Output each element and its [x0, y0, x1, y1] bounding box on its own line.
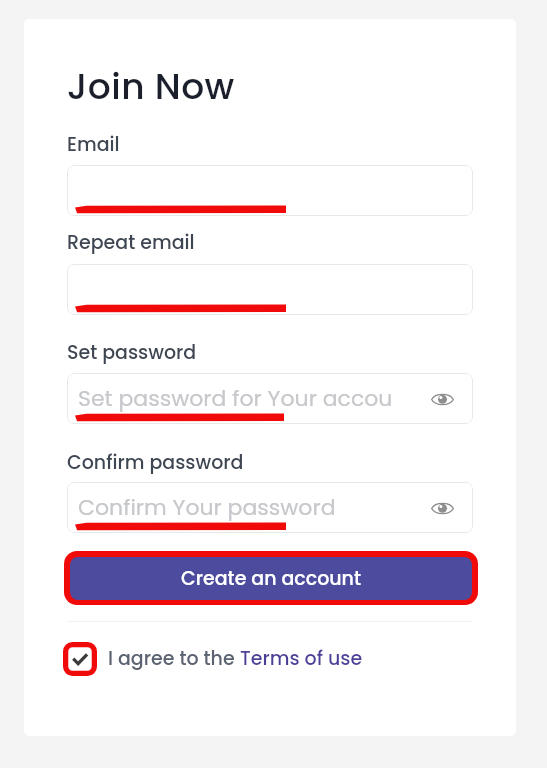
staticText: Set password for Your accou — [78, 383, 393, 414]
button[interactable]: I agree to the Terms of use — [63, 642, 97, 676]
button[interactable]: Set password for Your accou — [67, 373, 473, 424]
button[interactable]: Show password — [430, 387, 454, 411]
staticText: Repeat email — [67, 229, 195, 256]
staticText: Create an account — [181, 565, 362, 592]
button[interactable]: Show password — [430, 496, 454, 520]
staticText: Confirm password — [67, 449, 244, 476]
button[interactable] — [67, 264, 473, 315]
staticText: I agree to the — [108, 645, 240, 672]
button[interactable] — [67, 165, 473, 216]
staticText: Confirm Your password — [78, 492, 336, 523]
staticText: Join Now — [67, 61, 235, 111]
staticText: Set password — [67, 339, 197, 366]
button[interactable]: Confirm Your password — [67, 482, 473, 533]
button[interactable]: Create an account — [70, 557, 472, 600]
button[interactable]: Terms of use — [240, 645, 363, 672]
staticText: Email — [67, 131, 120, 158]
